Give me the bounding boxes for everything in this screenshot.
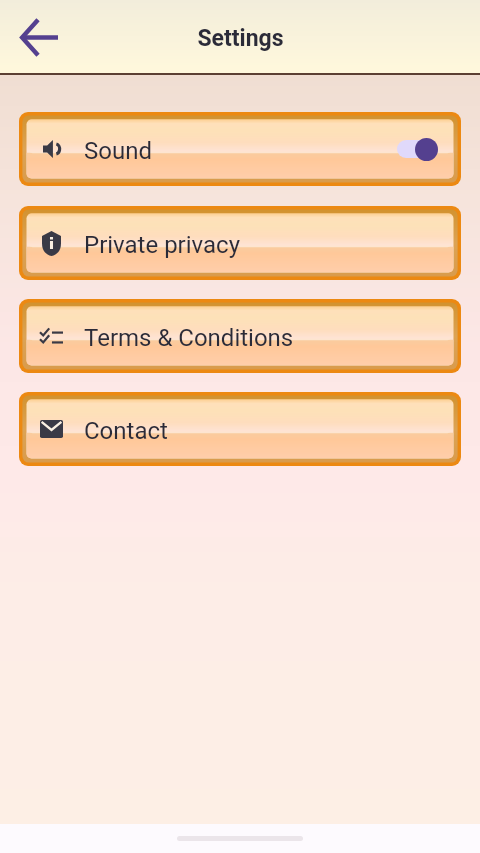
button[interactable]: Sound toggle [394, 133, 442, 165]
button[interactable]: Back [9, 9, 65, 65]
button[interactable]: Terms & Conditions [19, 299, 461, 373]
button[interactable]: Contact [19, 392, 461, 466]
button[interactable]: Sound [19, 112, 461, 186]
staticText: Private privacy [84, 231, 241, 259]
staticText: Settings [197, 25, 284, 52]
staticText: Sound [84, 137, 152, 165]
button[interactable]: Private privacy [19, 206, 461, 280]
staticText: Contact [84, 417, 168, 445]
staticText: Terms & Conditions [84, 324, 294, 352]
